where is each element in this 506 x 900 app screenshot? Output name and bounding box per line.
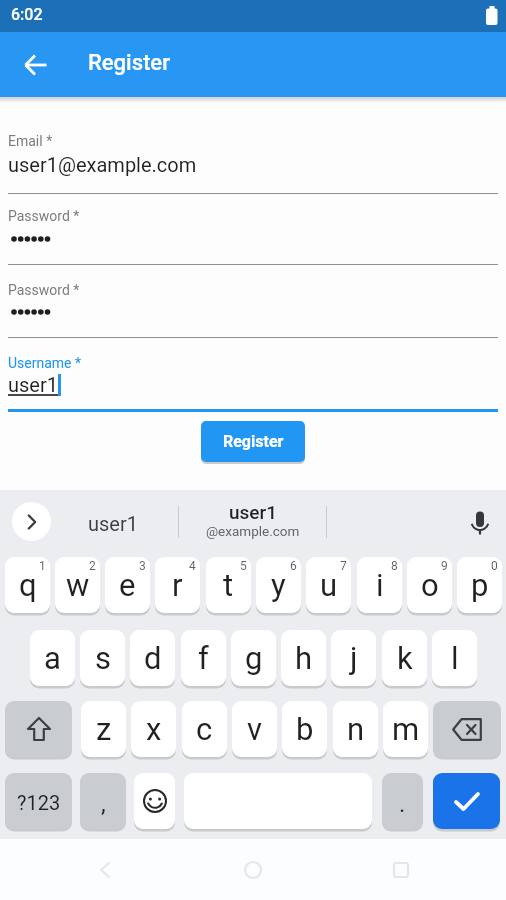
button[interactable]: k xyxy=(382,630,427,686)
staticText: k xyxy=(397,640,413,676)
staticText: n xyxy=(347,711,365,747)
button[interactable] xyxy=(462,505,498,541)
button[interactable]: o xyxy=(407,557,452,613)
staticText: y xyxy=(271,567,286,603)
staticText: o xyxy=(421,567,439,603)
button[interactable]: u xyxy=(306,557,351,613)
button[interactable]: w xyxy=(55,557,100,613)
button[interactable] xyxy=(85,850,125,890)
staticText: l xyxy=(451,640,459,676)
staticText: b xyxy=(296,711,314,747)
button[interactable] xyxy=(5,701,72,757)
button[interactable]: q xyxy=(5,557,50,613)
staticText: w xyxy=(66,567,90,603)
staticText: ?123 xyxy=(17,791,61,814)
button[interactable] xyxy=(433,773,500,829)
button[interactable] xyxy=(433,701,501,757)
button[interactable] xyxy=(14,43,58,87)
staticText: . xyxy=(399,790,406,818)
button[interactable]: r xyxy=(155,557,200,613)
button[interactable]: z xyxy=(81,701,126,757)
button[interactable]: d xyxy=(130,630,175,686)
staticText: 8 xyxy=(391,559,398,573)
button[interactable] xyxy=(134,773,175,829)
staticText: 6 xyxy=(290,559,297,573)
staticText: 5 xyxy=(240,559,247,573)
staticText: m xyxy=(392,711,420,747)
button[interactable]: . xyxy=(382,773,423,829)
button[interactable]: user1 xyxy=(57,505,169,541)
staticText: c xyxy=(196,711,213,747)
staticText: f xyxy=(198,640,209,676)
button[interactable]: f xyxy=(181,630,226,686)
staticText: 9 xyxy=(441,559,448,573)
staticText: u xyxy=(320,567,338,603)
staticText: s xyxy=(95,640,111,676)
button[interactable]: j xyxy=(331,630,376,686)
button[interactable]: ?123 xyxy=(5,773,72,829)
staticText: g xyxy=(245,640,263,676)
button[interactable]: , xyxy=(80,773,126,829)
button[interactable]: v xyxy=(232,701,277,757)
staticText: Email * xyxy=(8,133,53,149)
button[interactable]: b xyxy=(282,701,327,757)
button[interactable]: s xyxy=(80,630,125,686)
staticText: Register xyxy=(223,432,284,451)
button[interactable] xyxy=(233,850,273,890)
staticText: Password * xyxy=(8,282,80,298)
staticText: user1 xyxy=(8,373,58,396)
button[interactable]: t xyxy=(206,557,251,613)
button[interactable]: g xyxy=(231,630,276,686)
staticText: i xyxy=(376,567,384,603)
staticText: t xyxy=(223,567,234,603)
button[interactable]: n xyxy=(333,701,378,757)
staticText: , xyxy=(101,790,106,818)
staticText: user1 xyxy=(88,512,138,535)
staticText: user1@example.com xyxy=(8,153,197,176)
button[interactable]: e xyxy=(105,557,150,613)
button[interactable]: m xyxy=(383,701,428,757)
staticText: @example.com xyxy=(206,523,300,539)
button[interactable] xyxy=(381,850,421,890)
button[interactable]: c xyxy=(182,701,227,757)
button[interactable]: y xyxy=(256,557,301,613)
staticText: z xyxy=(96,711,112,747)
staticText: user1 xyxy=(229,501,278,523)
staticText: d xyxy=(144,640,162,676)
staticText: j xyxy=(350,640,358,676)
button[interactable]: p xyxy=(457,557,502,613)
button[interactable]: user1 xyxy=(187,496,319,544)
staticText: 6:02 xyxy=(11,5,43,24)
staticText: a xyxy=(44,640,61,676)
staticText: v xyxy=(247,711,263,747)
button[interactable]: Register xyxy=(201,421,305,462)
staticText: e xyxy=(119,567,136,603)
staticText: 4 xyxy=(189,559,196,573)
staticText: 0 xyxy=(491,559,498,573)
button[interactable]: a xyxy=(30,630,75,686)
staticText: 1 xyxy=(39,559,46,573)
button[interactable]: l xyxy=(432,630,477,686)
button[interactable] xyxy=(12,502,51,541)
button[interactable]: x xyxy=(131,701,176,757)
button[interactable]: i xyxy=(357,557,402,613)
staticText: 2 xyxy=(89,559,96,573)
staticText: p xyxy=(471,567,489,603)
staticText: q xyxy=(19,567,37,603)
staticText: r xyxy=(172,567,183,603)
staticText: 3 xyxy=(139,559,146,573)
staticText: Username * xyxy=(8,355,82,371)
staticText: Register xyxy=(88,50,170,76)
staticText: 7 xyxy=(340,559,347,573)
staticText: Password * xyxy=(8,208,80,224)
staticText: h xyxy=(295,640,313,676)
staticText: x xyxy=(146,711,162,747)
button[interactable]: h xyxy=(281,630,326,686)
